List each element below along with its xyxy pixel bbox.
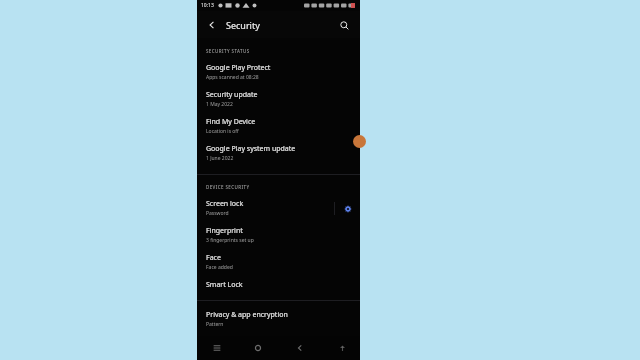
staticText: Password xyxy=(206,210,229,217)
button[interactable]: Home xyxy=(248,338,268,358)
button[interactable]: Google Play Protect xyxy=(197,59,360,86)
button[interactable]: Google Play system update xyxy=(197,140,360,167)
staticText: Face xyxy=(206,253,221,263)
staticText: 1 May 2022 xyxy=(206,101,233,108)
staticText: 3 fingerprints set up xyxy=(206,237,254,244)
button[interactable]: Search xyxy=(336,17,352,33)
button[interactable]: Face xyxy=(197,249,360,276)
staticText: Fingerprint xyxy=(206,226,243,236)
button[interactable]: Back xyxy=(205,18,219,32)
staticText: Privacy & app encryption xyxy=(206,310,288,320)
button[interactable]: Smart Lock xyxy=(197,276,360,295)
button[interactable]: Security update xyxy=(197,86,360,113)
button[interactable]: Fingerprint xyxy=(197,222,360,249)
staticText: Location is off xyxy=(206,128,239,135)
staticText: Security xyxy=(226,19,260,31)
staticText: Screen lock xyxy=(206,199,244,209)
staticText: Pattern xyxy=(206,321,224,328)
staticText: DEVICE SECURITY xyxy=(206,184,250,190)
button[interactable]: Find My Device xyxy=(197,113,360,140)
staticText: 1 June 2022 xyxy=(206,155,234,162)
button[interactable]: Floating bubble xyxy=(353,135,366,148)
button[interactable]: Screen lock xyxy=(197,195,360,222)
button[interactable]: Recent apps xyxy=(207,338,227,358)
staticText: Security update xyxy=(206,90,258,100)
staticText: Smart Lock xyxy=(206,280,243,290)
button[interactable]: Back xyxy=(290,338,310,358)
staticText: SECURITY STATUS xyxy=(206,48,250,54)
button[interactable]: Hide keyboard xyxy=(332,338,352,358)
staticText: Face added xyxy=(206,264,233,271)
staticText: Apps scanned at 08:28 xyxy=(206,74,259,81)
staticText: Find My Device xyxy=(206,117,256,127)
staticText: 10:13 xyxy=(201,2,214,9)
button[interactable]: Privacy & app encryption xyxy=(197,306,360,333)
staticText: Google Play Protect xyxy=(206,63,271,73)
button[interactable]: Screen lock settings xyxy=(341,202,354,215)
staticText: Google Play system update xyxy=(206,144,296,154)
